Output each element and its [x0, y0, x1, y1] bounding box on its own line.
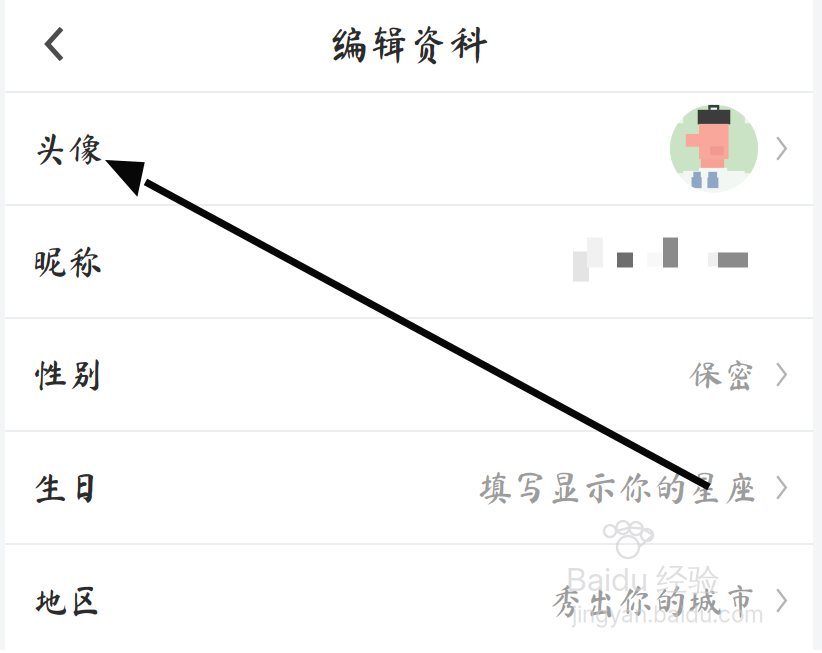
staticText: 昵称 [33, 244, 103, 279]
staticText: 头像 [33, 131, 103, 166]
button[interactable]: 生日 [5, 432, 813, 543]
staticText: 编辑资料 [329, 24, 489, 64]
button[interactable]: 性别 [5, 319, 813, 430]
staticText: 地区 [33, 583, 103, 618]
button[interactable]: 地区 [5, 545, 813, 653]
staticText: 保密 [688, 357, 758, 392]
staticText: 填写显示你的星座 [478, 470, 758, 505]
button[interactable]: 头像 [5, 93, 813, 204]
button[interactable]: 返回 [5, 0, 86, 91]
staticText: 生日 [33, 470, 103, 505]
staticText: Baidu 经验 [566, 560, 720, 601]
staticText: 性别 [33, 357, 103, 392]
staticText: 秀出你的城市 [548, 583, 758, 618]
button[interactable]: 昵称 [5, 206, 813, 317]
staticText: jingyan.baidu.com [572, 601, 764, 628]
